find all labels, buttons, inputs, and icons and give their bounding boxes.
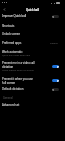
staticText: full screen: [2, 81, 16, 85]
staticText: General: [3, 96, 13, 100]
staticText: Shortcuts: [2, 24, 15, 28]
staticText: Default: [50, 42, 58, 45]
button[interactable]: Shortcuts: [0, 22, 65, 30]
button[interactable]: Toggle Improve Quick ball: [52, 15, 59, 18]
button[interactable]: Default dictation: [0, 85, 65, 93]
button[interactable]: Work automatic: [0, 49, 65, 57]
button[interactable]: Toggle Default dictation: [52, 88, 59, 91]
staticText: Preferred apps: [2, 41, 22, 45]
staticText: Work automatic: [2, 50, 23, 54]
button[interactable]: Toggle Prevent me in a video call: [52, 65, 59, 68]
staticText: dictation: [2, 65, 14, 69]
staticText: Unlock screen: [2, 32, 21, 36]
staticText: Prevent it when you use: [2, 77, 33, 81]
button[interactable]: Preferred apps: [0, 39, 65, 47]
staticText: Default dictation: [2, 87, 24, 91]
button[interactable]: Prevent it when you use: [0, 76, 65, 85]
staticText: Prevent me in a video call: [2, 61, 35, 65]
staticText: Video hidden when recording: [2, 69, 34, 72]
button[interactable]: Advanced set: [0, 101, 65, 109]
button[interactable]: Improve Quick ball: [0, 12, 65, 20]
button[interactable]: Unlock screen: [0, 30, 65, 38]
staticText: Quick ball hides when idle: [2, 54, 31, 57]
staticText: Improve Quick ball: [2, 14, 27, 18]
button[interactable]: Back: [0, 5, 9, 14]
button[interactable]: Toggle Prevent it when you use: [52, 79, 59, 82]
staticText: Advanced set: [2, 103, 20, 107]
staticText: Quick ball: [26, 8, 39, 12]
button[interactable]: Prevent me in a video call: [0, 61, 65, 72]
